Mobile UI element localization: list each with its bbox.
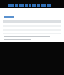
button[interactable]: Page heading: [8, 4, 51, 7]
